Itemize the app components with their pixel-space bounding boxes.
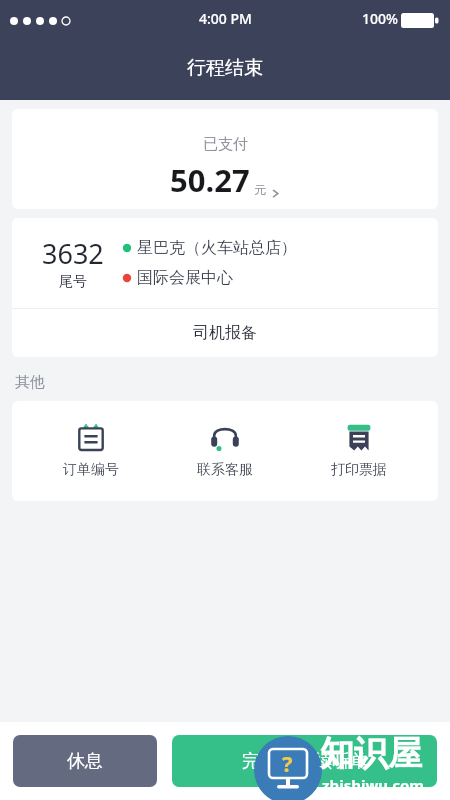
button[interactable]: 联系客服 bbox=[170, 417, 280, 485]
staticText: 订单编号 bbox=[63, 461, 119, 479]
staticText: ? bbox=[282, 748, 293, 778]
staticText: 知识屋 bbox=[320, 732, 422, 775]
staticText: 星巴克（火车站总店） bbox=[137, 238, 297, 258]
other: 打印票据 bbox=[344, 423, 374, 453]
button[interactable]: 司机报备 bbox=[12, 309, 438, 357]
button[interactable]: 完成并继续听单 bbox=[172, 735, 437, 787]
staticText: 已支付 bbox=[203, 135, 248, 154]
button[interactable]: 打印票据 bbox=[304, 417, 414, 485]
staticText: zhishiwu.com bbox=[322, 775, 424, 795]
button[interactable]: 已支付 bbox=[12, 109, 438, 209]
staticText: 3632 bbox=[42, 235, 104, 272]
staticText: 尾号 bbox=[59, 273, 87, 291]
staticText: 4:00 PM bbox=[199, 9, 252, 28]
other: 订单编号 bbox=[76, 423, 106, 453]
button[interactable]: 订单编号 bbox=[36, 417, 146, 485]
staticText: 完成并继续听单 bbox=[242, 750, 368, 773]
staticText: 行程结束 bbox=[187, 56, 263, 80]
staticText: 50.27 bbox=[170, 159, 250, 201]
staticText: 休息 bbox=[67, 750, 103, 773]
staticText: 司机报备 bbox=[193, 323, 257, 343]
staticText: 打印票据 bbox=[331, 461, 387, 479]
staticText: 联系客服 bbox=[197, 461, 253, 479]
staticText: 元 bbox=[254, 182, 266, 197]
staticText: 国际会展中心 bbox=[137, 268, 233, 288]
other: 联系客服 bbox=[210, 423, 240, 453]
staticText: 100% bbox=[362, 9, 398, 28]
button[interactable]: 3632 bbox=[12, 218, 438, 308]
staticText: 其他 bbox=[15, 373, 45, 392]
button[interactable]: 休息 bbox=[13, 735, 157, 787]
